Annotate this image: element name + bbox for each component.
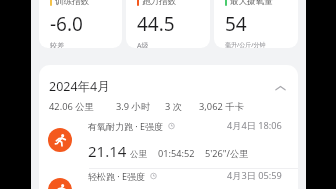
staticText: 4月4日 18:06 [227,119,282,132]
button[interactable]: 最大摄氧量 [214,0,298,48]
staticText: 42.06 公里 [49,100,94,111]
staticText: -6.0 [50,11,83,37]
staticText: 较差 [50,41,64,48]
button[interactable]: 跑力指数 [126,0,210,48]
staticText: 5'26"/公里 [205,147,249,160]
button[interactable]: 训练指数 [39,0,122,48]
staticText: 44.5 [137,11,175,37]
staticText: 跑力指数 [142,0,176,7]
staticText: 有氧耐力跑 · E强度 [88,120,164,132]
staticText: 3,062 千卡 [199,100,244,111]
staticText: 轻松跑 · E强度 [88,170,146,182]
staticText: 4月3日 05:59 [227,169,282,182]
staticText: 公里 [130,149,147,160]
staticText: 3.9 小时 [116,100,151,111]
staticText: 3 次 [165,100,183,111]
staticText: A级 [137,41,149,48]
staticText: 最大摄氧量 [230,0,273,7]
staticText: 训练指数 [55,0,89,7]
staticText: 21.14 [88,141,127,161]
button[interactable]: Collapse month summary [272,80,288,96]
staticText: 54 [225,11,247,37]
staticText: 毫升/公斤/分钟 [225,41,266,48]
staticText: 01:54:52 [158,147,195,160]
button[interactable]: 轻松跑 · E强度 [39,161,298,189]
button[interactable]: 有氧耐力跑 · E强度 [39,111,298,168]
staticText: 2024年4月 [49,78,110,95]
